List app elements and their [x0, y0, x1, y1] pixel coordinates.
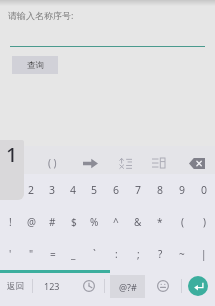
staticText: 2 [28, 183, 35, 197]
button[interactable]: # [42, 206, 63, 238]
button[interactable]: = [42, 238, 63, 270]
button[interactable]: 6 [105, 174, 127, 206]
button[interactable]: Recent [73, 270, 105, 302]
button[interactable]: 0 [193, 174, 215, 206]
staticText: ! [9, 215, 12, 229]
button[interactable]: Emoji [147, 270, 179, 302]
staticText: 123 [44, 280, 60, 292]
button[interactable]: Delete [184, 146, 209, 174]
staticText: ` [93, 247, 96, 261]
button[interactable]: 查询 [12, 56, 58, 74]
staticText: ( ) [48, 156, 57, 170]
button[interactable]: 3 [42, 174, 63, 206]
button[interactable]: Layout [146, 146, 171, 174]
button[interactable]: $ [63, 206, 84, 238]
staticText: 请输入名称序号: [8, 9, 74, 21]
button[interactable]: 5 [84, 174, 105, 206]
staticText: ( [181, 215, 184, 229]
staticText: 查询 [27, 60, 44, 71]
staticText: ~ [179, 247, 185, 261]
staticText: $ [71, 215, 77, 229]
staticText: % [90, 215, 99, 229]
button[interactable]: ~ [171, 238, 193, 270]
staticText: 3 [49, 183, 56, 197]
button[interactable]: 2 [21, 174, 42, 206]
staticText: ) [203, 215, 206, 229]
staticText: 7 [135, 183, 142, 197]
staticText: @?# [119, 281, 137, 293]
button[interactable]: _ [63, 238, 84, 270]
button[interactable]: Parentheses [40, 146, 65, 174]
staticText: : [115, 247, 118, 261]
staticText: | [201, 247, 207, 261]
staticText: 1 [6, 141, 18, 168]
button[interactable]: ' [0, 238, 21, 270]
button[interactable]: 4 [63, 174, 84, 206]
button[interactable]: ` [84, 238, 105, 270]
button[interactable]: 返回 [0, 270, 31, 302]
staticText: 0 [201, 183, 208, 197]
button[interactable]: @?# [110, 275, 145, 298]
staticText: 4 [70, 183, 77, 197]
button[interactable]: ! [0, 206, 21, 238]
staticText: 6 [113, 183, 120, 197]
staticText: _ [71, 247, 76, 261]
staticText: ^ [113, 215, 119, 229]
staticText: 8 [157, 183, 164, 197]
button[interactable]: 8 [149, 174, 171, 206]
staticText: & [134, 215, 142, 229]
button[interactable]: & [127, 206, 149, 238]
staticText: * [157, 215, 163, 229]
button[interactable]: 1 [0, 174, 21, 206]
button[interactable]: @ [21, 206, 42, 238]
button[interactable]: 9 [171, 174, 193, 206]
staticText: @ [27, 215, 36, 229]
staticText: 返回 [7, 281, 24, 292]
staticText: " [29, 247, 34, 261]
button[interactable]: ? [149, 238, 171, 270]
button[interactable]: | [193, 238, 215, 270]
staticText: ' [9, 247, 12, 261]
staticText: = [50, 247, 56, 261]
button[interactable]: : [105, 238, 127, 270]
button[interactable]: Switch input [113, 146, 138, 174]
staticText: ; [137, 247, 140, 261]
button[interactable]: 123 [36, 270, 67, 302]
button[interactable]: " [21, 238, 42, 270]
staticText: ? [158, 247, 163, 261]
staticText: 5 [91, 183, 98, 197]
button[interactable]: % [84, 206, 105, 238]
staticText: 9 [179, 183, 186, 197]
button[interactable]: ^ [105, 206, 127, 238]
button[interactable]: Next [78, 146, 103, 174]
button[interactable]: Enter [188, 276, 208, 296]
button[interactable]: * [149, 206, 171, 238]
staticText: # [49, 215, 56, 229]
button[interactable]: ; [127, 238, 149, 270]
button[interactable]: 7 [127, 174, 149, 206]
button[interactable]: ( [171, 206, 193, 238]
button[interactable]: ) [193, 206, 215, 238]
